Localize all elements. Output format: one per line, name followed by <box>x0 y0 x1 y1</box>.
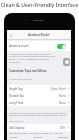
staticText: None <box>59 101 66 105</box>
button[interactable]: Back <box>8 32 14 38</box>
button[interactable]: Double Tap <box>7 92 71 99</box>
staticText: Set opacity when you are not using the A… <box>9 131 69 134</box>
staticText: CUSTOMISE ACTIONS <box>9 78 33 81</box>
button[interactable]: Assistive touch <box>7 41 71 51</box>
staticText: Medium <box>33 135 43 138</box>
staticText: 40% <box>60 126 66 130</box>
staticText: Double Tap <box>9 94 24 98</box>
staticText: Assistive touch allows you to use your i… <box>9 52 58 64</box>
staticText: Assistive touch <box>9 44 29 48</box>
staticText: Choose a custom action you can perform b… <box>9 111 69 117</box>
button[interactable]: Assistive Touch button <box>63 58 70 66</box>
staticText: Single Tap <box>9 87 23 91</box>
button[interactable]: Idle Opacity <box>7 124 71 131</box>
staticText: AssistiveTouch <box>28 33 50 37</box>
staticText: Shown <box>10 135 18 138</box>
staticText: Long Press <box>9 101 24 105</box>
staticText: Customise Top Level Menu <box>9 69 47 73</box>
staticText: Reduced <box>58 135 68 138</box>
button[interactable]: Long Press <box>7 99 71 106</box>
staticText: Open Panel <box>51 87 66 91</box>
staticText: Clean & User-Friendly Interface <box>0 1 79 8</box>
staticText: IDLE OPACITY <box>9 120 24 123</box>
staticText: None <box>59 94 66 98</box>
staticText: Idle Opacity <box>9 126 25 130</box>
button[interactable]: Single Tap <box>7 85 71 92</box>
